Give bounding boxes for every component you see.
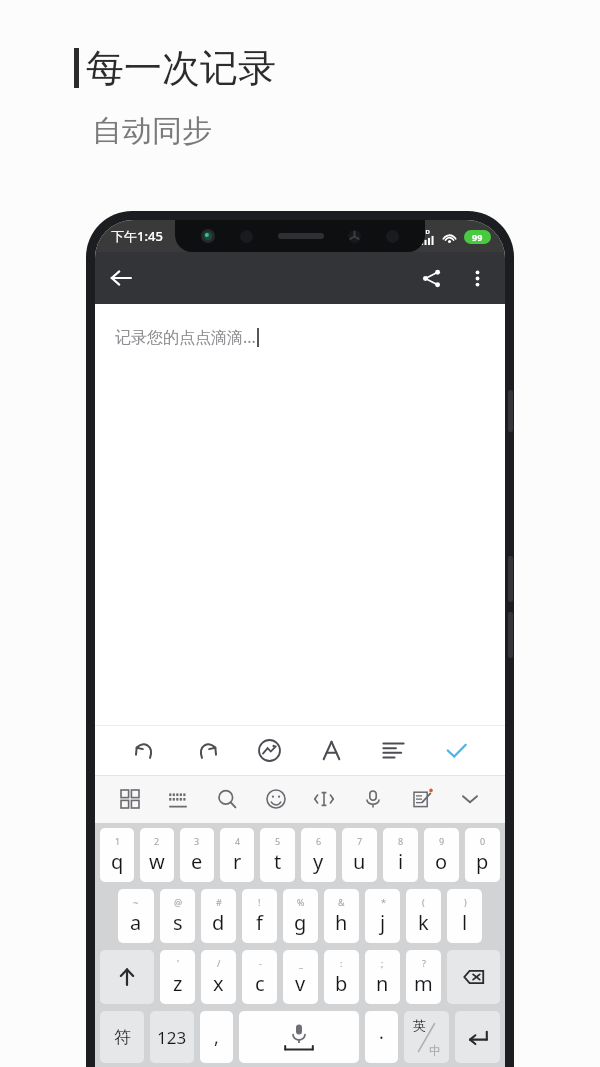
button[interactable]: ,: [200, 1011, 233, 1063]
button[interactable]: 2: [140, 828, 174, 882]
button[interactable]: Share: [407, 254, 455, 302]
staticText: y: [313, 848, 324, 875]
button[interactable]: 符: [100, 1011, 144, 1063]
staticText: :: [340, 957, 343, 969]
button[interactable]: Back: [95, 252, 147, 304]
button[interactable]: Handwriting: [402, 779, 442, 819]
button[interactable]: Backspace: [447, 950, 500, 1004]
button[interactable]: 9: [424, 828, 459, 882]
staticText: 7: [357, 835, 363, 847]
staticText: /: [217, 957, 221, 969]
staticText: !: [258, 896, 261, 908]
staticText: %: [297, 896, 305, 908]
button[interactable]: @: [160, 889, 195, 943]
button[interactable]: Shift: [100, 950, 154, 1004]
staticText: #: [216, 896, 222, 908]
button[interactable]: ): [447, 889, 482, 943]
button[interactable]: Text style: [308, 727, 354, 773]
staticText: 123: [157, 1026, 187, 1049]
button[interactable]: ·: [365, 1011, 398, 1063]
button[interactable]: 4: [220, 828, 254, 882]
staticText: f: [256, 909, 263, 936]
button[interactable]: #: [201, 889, 236, 943]
staticText: d: [212, 909, 225, 936]
button[interactable]: 123: [150, 1011, 194, 1063]
staticText: (: [422, 896, 425, 908]
staticText: ·: [379, 1025, 384, 1050]
staticText: s: [173, 909, 183, 936]
staticText: l: [462, 909, 468, 936]
button[interactable]: !: [242, 889, 277, 943]
button[interactable]: &: [324, 889, 359, 943]
staticText: c: [255, 970, 265, 997]
button[interactable]: %: [283, 889, 318, 943]
staticText: ': [177, 957, 180, 969]
staticText: j: [380, 909, 386, 936]
staticText: n: [376, 970, 389, 997]
button[interactable]: Enter: [455, 1011, 500, 1063]
button[interactable]: *: [365, 889, 400, 943]
staticText: 每一次记录: [86, 44, 276, 92]
staticText: z: [173, 970, 183, 997]
staticText: ,: [214, 1025, 219, 1050]
button[interactable]: Search: [207, 779, 247, 819]
staticText: *: [381, 896, 386, 908]
staticText: ~: [133, 896, 139, 908]
staticText: r: [233, 848, 242, 875]
staticText: h: [335, 909, 348, 936]
button[interactable]: Keyboard layout: [158, 779, 198, 819]
staticText: e: [191, 848, 203, 875]
button[interactable]: Hide keyboard: [450, 779, 490, 819]
button[interactable]: ?: [406, 950, 441, 1004]
button[interactable]: Voice input: [353, 779, 393, 819]
staticText: t: [274, 848, 282, 875]
button[interactable]: 8: [383, 828, 418, 882]
staticText: 自动同步: [92, 112, 212, 150]
button[interactable]: (: [406, 889, 441, 943]
button[interactable]: ': [160, 950, 195, 1004]
staticText: g: [294, 909, 307, 936]
staticText: 8: [398, 835, 404, 847]
button[interactable]: Switch language: [404, 1011, 449, 1063]
staticText: 0: [480, 835, 486, 847]
button[interactable]: 7: [342, 828, 377, 882]
button[interactable]: -: [242, 950, 277, 1004]
staticText: x: [213, 970, 224, 997]
staticText: 4: [235, 835, 241, 847]
staticText: b: [335, 970, 348, 997]
staticText: 2: [154, 835, 160, 847]
staticText: ;: [381, 957, 384, 969]
staticText: _: [299, 957, 303, 969]
staticText: v: [295, 970, 306, 997]
button[interactable]: 6: [301, 828, 336, 882]
button[interactable]: 0: [465, 828, 500, 882]
button[interactable]: Move cursor: [304, 779, 344, 819]
staticText: 记录您的点点滴滴...: [115, 326, 256, 348]
button[interactable]: Insert image: [246, 727, 292, 773]
button[interactable]: Undo: [121, 727, 167, 773]
button[interactable]: /: [201, 950, 236, 1004]
button[interactable]: Apps: [110, 779, 150, 819]
button[interactable]: ;: [365, 950, 400, 1004]
button[interactable]: Done: [433, 727, 479, 773]
staticText: 3: [194, 835, 200, 847]
button[interactable]: 5: [260, 828, 295, 882]
staticText: i: [398, 848, 404, 875]
staticText: @: [174, 896, 183, 908]
button[interactable]: ~: [118, 889, 154, 943]
button[interactable]: Alignment: [370, 727, 416, 773]
button[interactable]: 3: [180, 828, 214, 882]
button[interactable]: More options: [455, 256, 499, 300]
staticText: q: [111, 848, 124, 875]
staticText: 99: [472, 231, 483, 243]
button[interactable]: 1: [100, 828, 134, 882]
button[interactable]: :: [324, 950, 359, 1004]
button[interactable]: Redo: [184, 727, 230, 773]
staticText: k: [418, 909, 429, 936]
button[interactable]: Emoji: [256, 779, 296, 819]
button[interactable]: _: [283, 950, 318, 1004]
staticText: 下午1:45: [111, 227, 163, 245]
staticText: 1: [115, 835, 121, 847]
staticText: 9: [439, 835, 445, 847]
button[interactable]: Space: [239, 1011, 359, 1063]
